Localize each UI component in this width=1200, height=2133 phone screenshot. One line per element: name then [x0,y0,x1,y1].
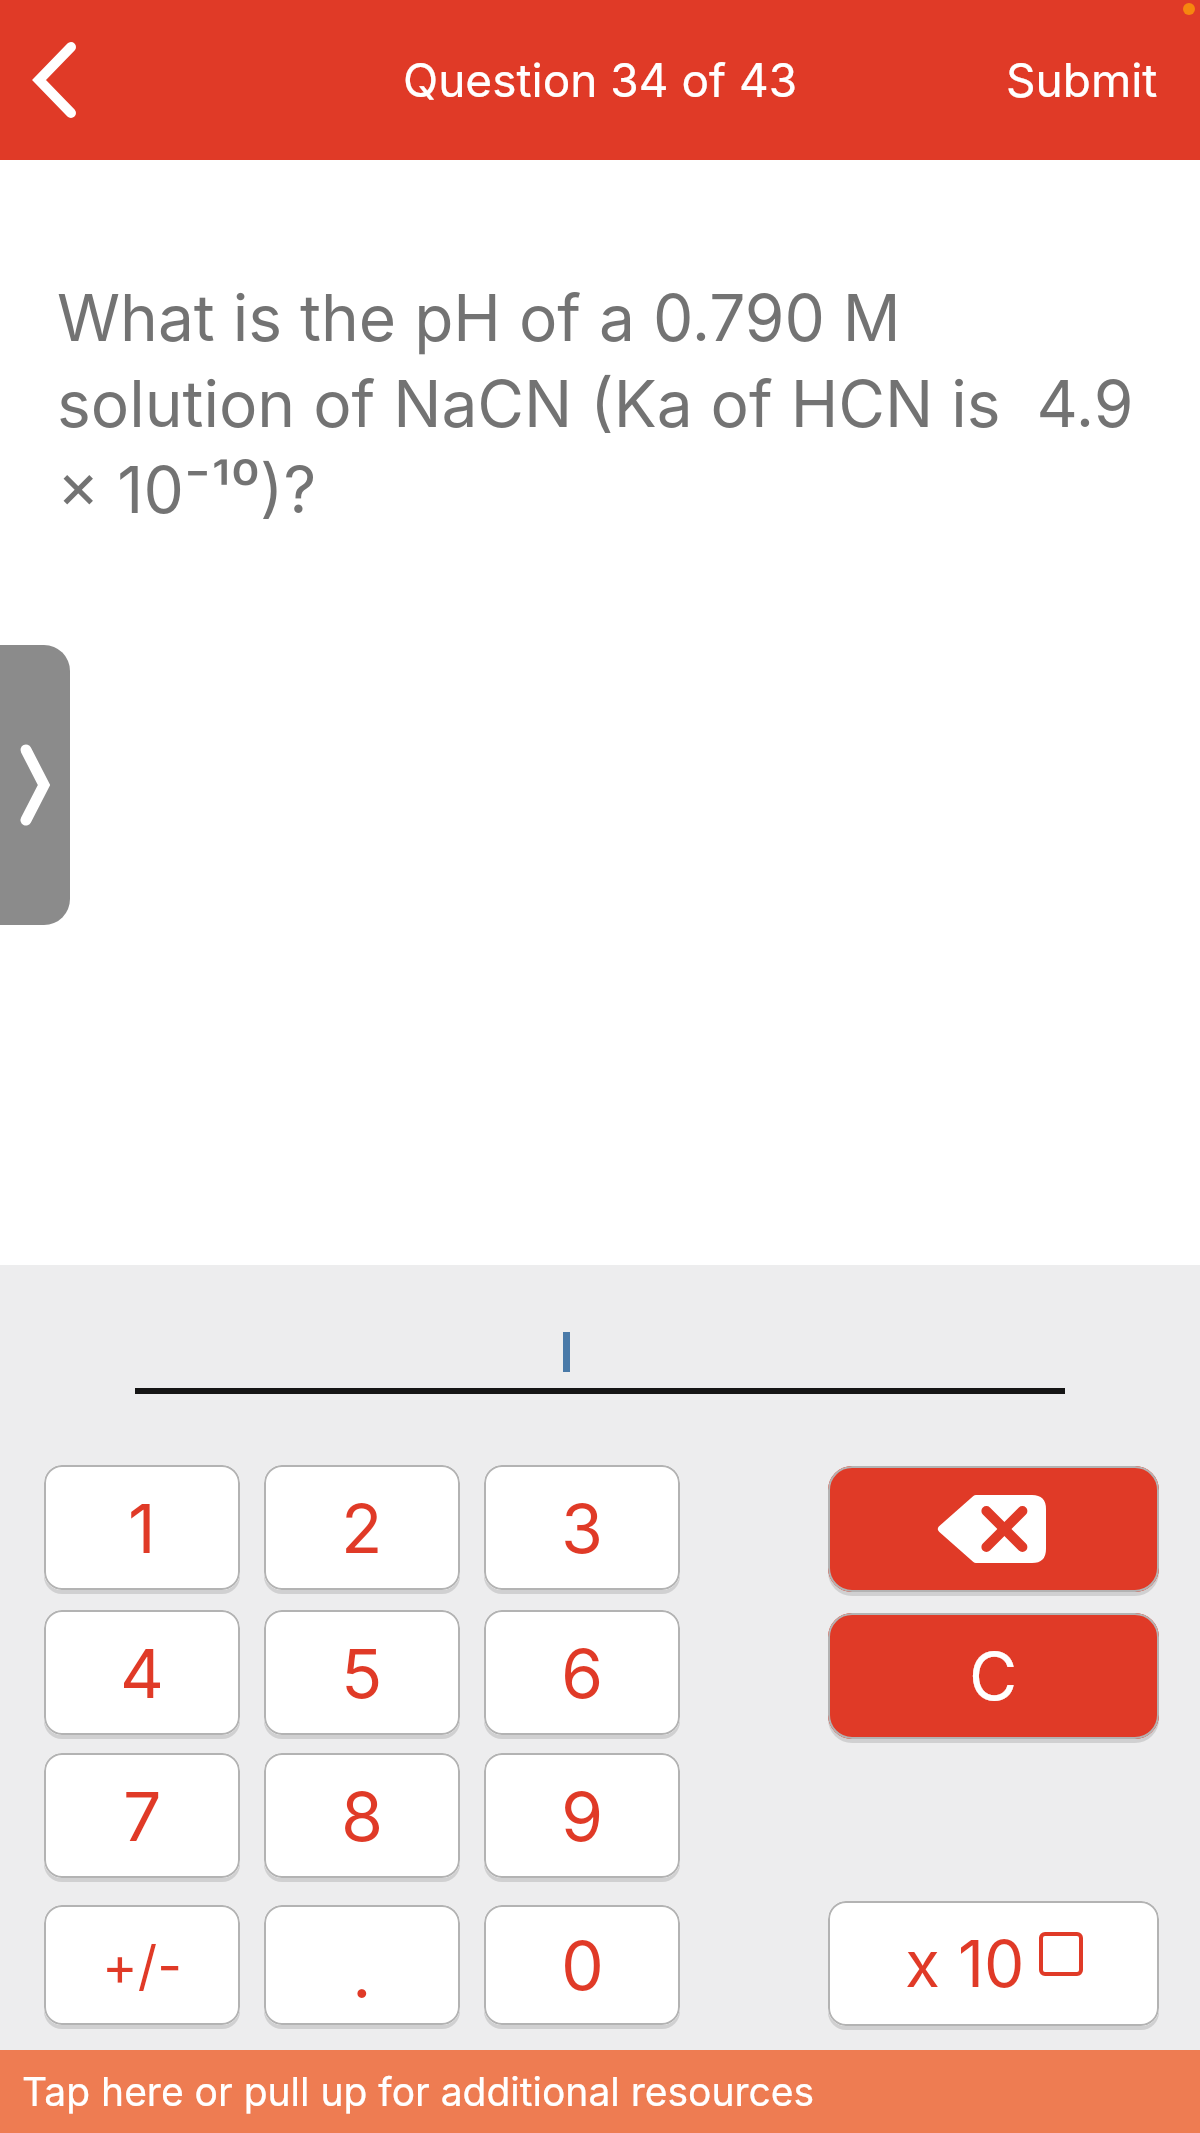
staticText: 3 [561,1487,604,1569]
staticText: 2 [341,1487,383,1569]
button[interactable]: 2 [264,1465,460,1590]
staticText: 5 [341,1632,383,1714]
button[interactable]: 6 [484,1610,680,1735]
staticText: Submit [1006,52,1158,108]
button[interactable]: 4 [44,1610,240,1735]
staticText: 1 [128,1487,156,1569]
staticText: 8 [341,1775,384,1857]
staticText: 4 [120,1632,164,1714]
staticText: Question 34 of 43 [403,52,798,108]
staticText: Tap here or pull up for additional resou… [22,2068,815,2115]
button[interactable]: 3 [484,1465,680,1590]
button[interactable] [828,1466,1159,1592]
staticText: 9 [561,1775,604,1857]
button[interactable]: 8 [264,1753,460,1878]
staticText: x 10 [905,1925,1025,2002]
button[interactable]: 9 [484,1753,680,1878]
staticText: C [969,1636,1018,1716]
button[interactable]: . [264,1905,460,2025]
staticText: 0 [561,1924,604,2006]
button[interactable]: Tap here or pull up for additional resou… [0,2050,1200,2133]
button[interactable]: x 10 [828,1901,1159,2026]
button[interactable]: 7 [44,1753,240,1878]
staticText: . [352,1932,372,2014]
button[interactable]: C [828,1613,1159,1739]
button[interactable]: +/- [44,1905,240,2025]
staticText: +/- [102,1933,183,1998]
button[interactable] [0,645,70,925]
button[interactable]: 0 [484,1905,680,2025]
staticText: 6 [561,1632,604,1714]
button[interactable] [0,0,110,160]
button[interactable]: Submit [1006,52,1158,108]
button[interactable]: 1 [44,1465,240,1590]
staticText: What is the pH of a 0.790 M solution of … [57,279,1134,528]
button[interactable]: 5 [264,1610,460,1735]
staticText: 7 [123,1775,162,1857]
